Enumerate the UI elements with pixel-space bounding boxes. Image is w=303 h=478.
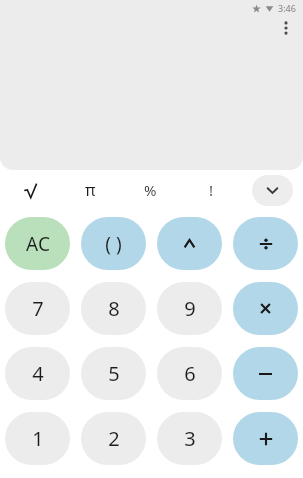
button[interactable]: ( ) bbox=[81, 217, 146, 270]
button[interactable]: √ bbox=[0, 170, 60, 210]
button[interactable]: + bbox=[233, 412, 298, 465]
staticText: AC bbox=[26, 231, 50, 257]
button[interactable]: 4 bbox=[5, 347, 70, 400]
staticText: 5 bbox=[108, 360, 120, 387]
staticText: 3 bbox=[184, 425, 196, 452]
staticText: 1 bbox=[32, 425, 44, 452]
button[interactable]: ^ bbox=[157, 217, 222, 270]
staticText: 9 bbox=[184, 295, 196, 322]
button[interactable]: AC bbox=[5, 217, 70, 270]
staticText: 6 bbox=[184, 360, 196, 387]
staticText: ( ) bbox=[105, 231, 122, 257]
staticText: 8 bbox=[108, 295, 120, 322]
button[interactable]: factorial bbox=[181, 170, 242, 210]
button[interactable]: 1 bbox=[5, 412, 70, 465]
staticText: 4 bbox=[32, 360, 44, 387]
button[interactable]: 2 bbox=[81, 412, 146, 465]
staticText: 2 bbox=[108, 425, 120, 452]
button[interactable]: 5 bbox=[81, 347, 146, 400]
staticText: 3:46 bbox=[278, 2, 296, 14]
button[interactable]: ÷ bbox=[233, 217, 298, 270]
staticText: π bbox=[85, 179, 96, 201]
staticText: % bbox=[144, 180, 157, 200]
button[interactable]: 3 bbox=[157, 412, 222, 465]
button[interactable]: 8 bbox=[81, 282, 146, 335]
button[interactable]: Collapse bbox=[252, 175, 293, 206]
staticText: ! bbox=[209, 180, 214, 200]
button[interactable]: 7 bbox=[5, 282, 70, 335]
staticText: 7 bbox=[32, 295, 44, 322]
button[interactable]: 6 bbox=[157, 347, 222, 400]
button[interactable]: percent bbox=[120, 170, 181, 210]
button[interactable]: pi bbox=[60, 170, 120, 210]
button[interactable]: More options bbox=[272, 14, 300, 42]
button[interactable]: × bbox=[233, 282, 298, 335]
button[interactable]: − bbox=[233, 347, 298, 400]
button[interactable]: 9 bbox=[157, 282, 222, 335]
